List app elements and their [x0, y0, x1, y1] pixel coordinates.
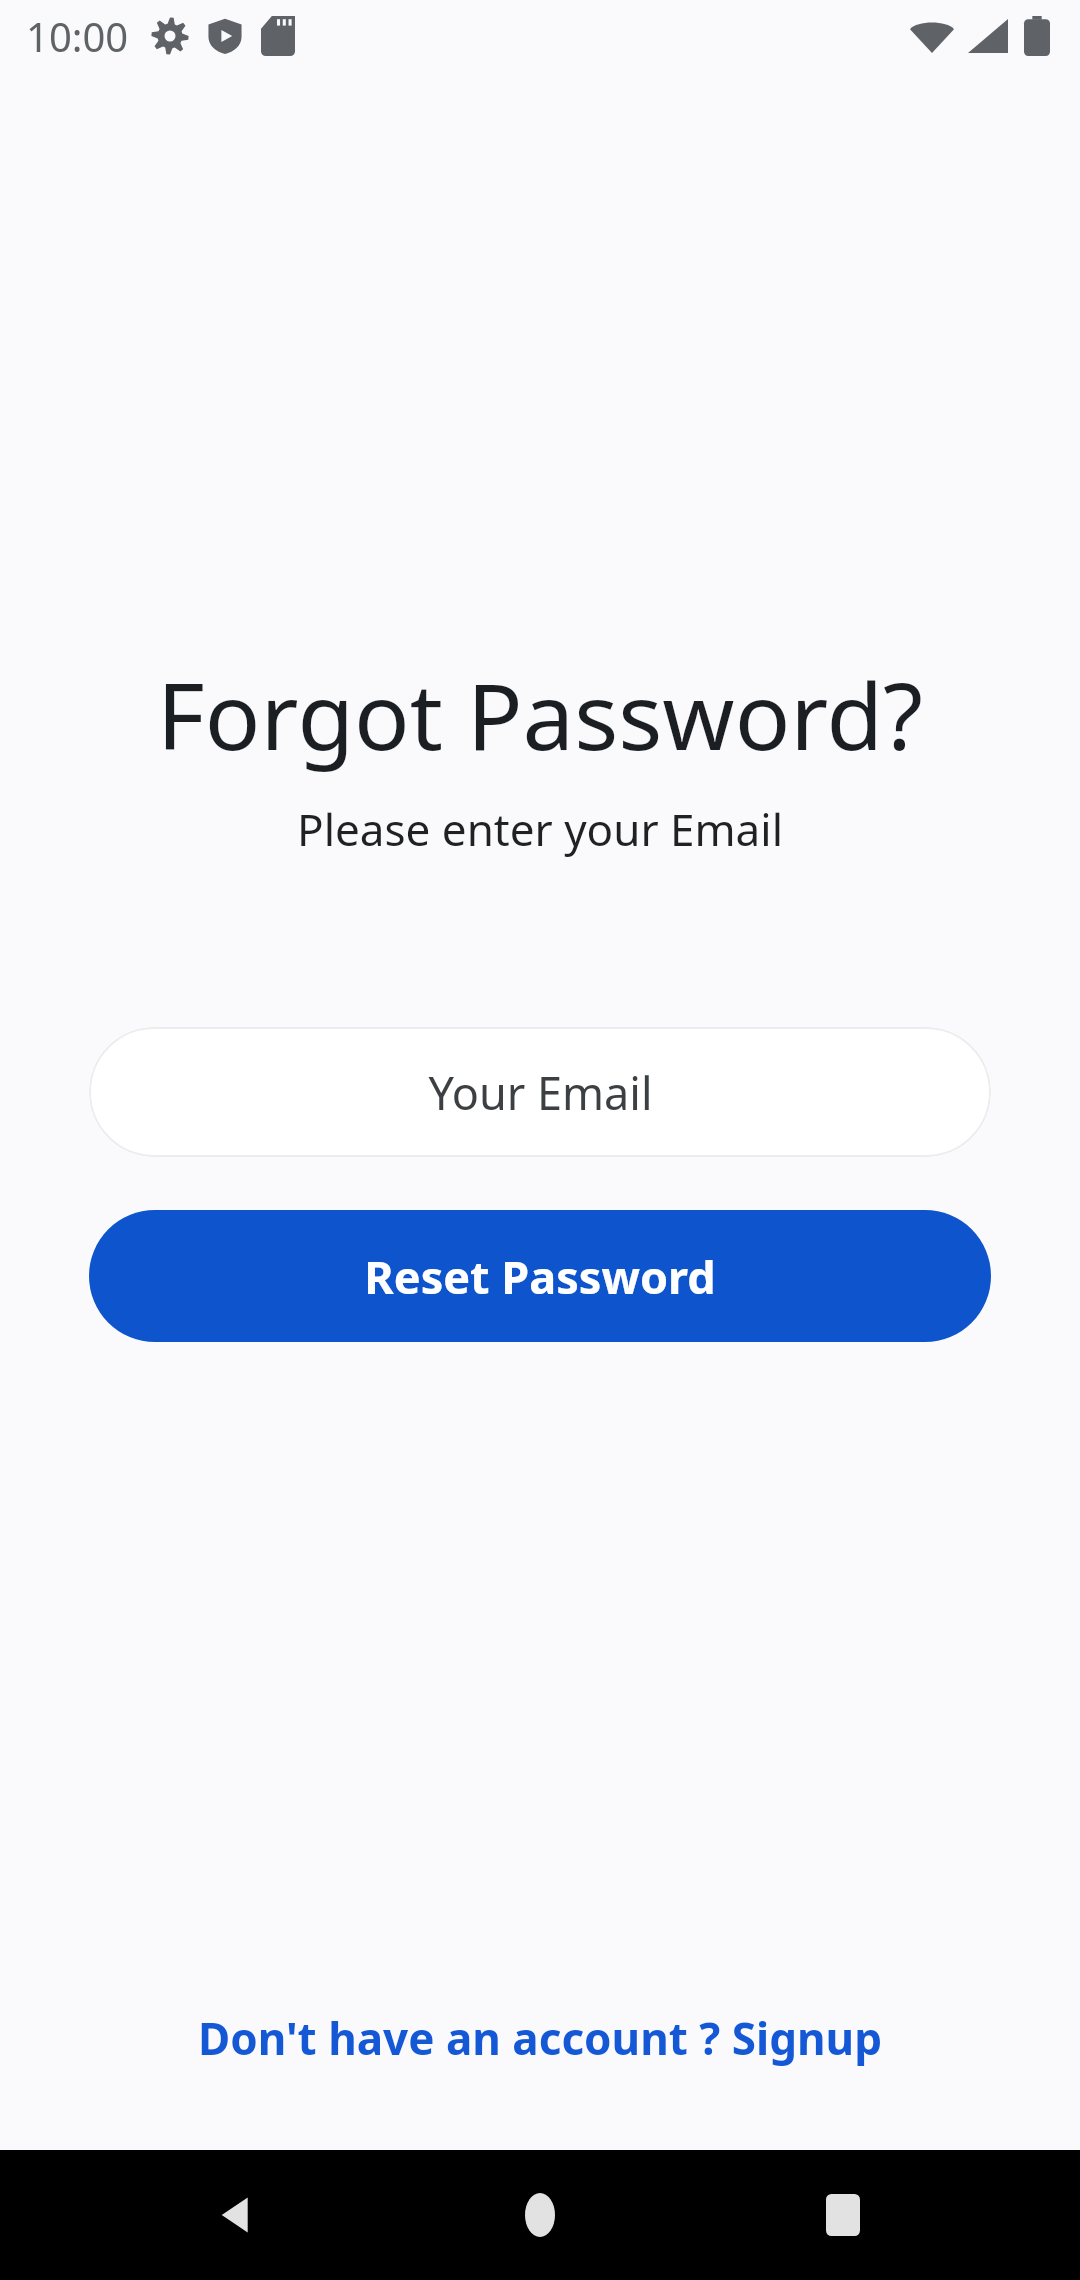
- button[interactable]: Your Email: [89, 1027, 991, 1157]
- staticText: Your Email: [428, 1062, 653, 1123]
- button[interactable]: Don't have an account ? Signup: [182, 2000, 898, 2076]
- staticText: Forgot Password?: [157, 652, 923, 777]
- button[interactable]: Reset Password: [89, 1210, 991, 1342]
- staticText: 10:00: [26, 9, 129, 63]
- button[interactable]: Home: [475, 2150, 605, 2280]
- button[interactable]: Recent apps: [778, 2150, 908, 2280]
- button[interactable]: Back: [173, 2150, 303, 2280]
- staticText: Reset Password: [364, 1246, 716, 1307]
- staticText: Please enter your Email: [297, 799, 783, 859]
- staticText: Don't have an account ? Signup: [198, 2008, 882, 2068]
